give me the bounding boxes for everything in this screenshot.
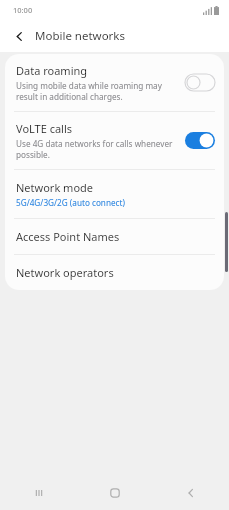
staticText: Use 4G data networks for calls whenever … [16, 138, 179, 160]
button[interactable]: VoLTE calls [5, 112, 224, 169]
staticText: 5G/4G/3G/2G (auto connect) [16, 197, 125, 208]
staticText: Using mobile data while roaming may resu… [16, 80, 179, 102]
button[interactable]: Navigate up [8, 25, 30, 47]
staticText: Mobile networks [35, 28, 126, 44]
staticText: 10:00 [13, 5, 33, 15]
button[interactable]: Access Point Names [5, 219, 224, 254]
button[interactable]: Network mode [5, 170, 224, 218]
button[interactable]: Home [77, 476, 153, 510]
staticText: Data roaming [16, 63, 88, 78]
button[interactable]: Data roaming [5, 54, 224, 111]
staticText: Network operators [16, 265, 114, 280]
staticText: Access Point Names [16, 229, 120, 244]
button[interactable]: Back [153, 476, 229, 510]
button[interactable]: On [185, 132, 215, 149]
button[interactable]: Network operators [5, 255, 224, 290]
button[interactable]: Off [185, 74, 215, 91]
button[interactable]: Recent apps [0, 476, 77, 510]
staticText: Network mode [16, 180, 94, 195]
staticText: VoLTE calls [16, 121, 73, 136]
